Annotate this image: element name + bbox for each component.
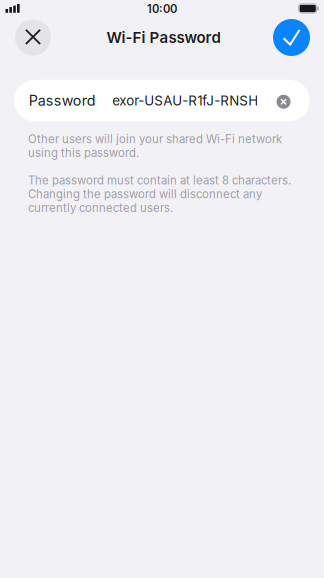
staticText: 10:00 [147,2,177,16]
button[interactable]: Done [273,19,310,56]
staticText: Password [29,92,96,109]
staticText: exor-USAU-R1fJ-RNSH [112,92,258,109]
button[interactable]: Clear password [277,93,310,107]
staticText: The password must contain at least 8 cha… [28,173,291,215]
button[interactable]: Password [14,80,310,121]
staticText: Other users will join your shared Wi-Fi … [28,132,282,160]
staticText: Wi-Fi Password [106,28,220,47]
button[interactable]: Close [15,19,51,55]
